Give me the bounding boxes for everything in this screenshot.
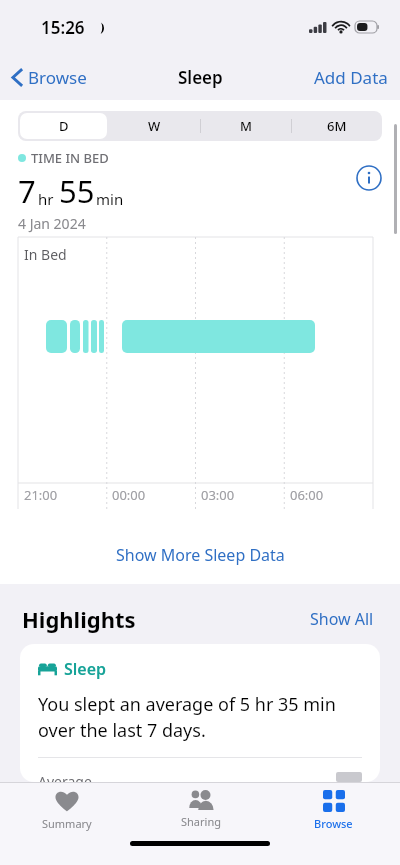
staticText: Sleep: [64, 658, 107, 680]
button[interactable]: Information: [356, 165, 382, 191]
staticText: Summary: [42, 816, 92, 831]
staticText: D: [59, 117, 69, 135]
staticText: Sleep: [178, 66, 223, 89]
staticText: Highlights: [22, 604, 136, 634]
staticText: Show All: [310, 608, 374, 630]
staticText: Browse: [28, 66, 87, 89]
staticText: 03:00: [201, 486, 235, 504]
button[interactable]: Sharing: [134, 783, 267, 833]
staticText: Sharing: [181, 814, 221, 829]
staticText: Add Data: [314, 66, 388, 89]
button[interactable]: Show More Sleep Data: [0, 536, 400, 574]
staticText: Average: [38, 772, 92, 782]
button[interactable]: Summary: [0, 783, 134, 833]
staticText: Show More Sleep Data: [116, 544, 285, 566]
button[interactable]: M: [200, 111, 291, 141]
staticText: min: [96, 189, 124, 209]
staticText: In Bed: [24, 245, 67, 264]
staticText: Browse: [314, 816, 353, 831]
button[interactable]: 6M: [291, 111, 382, 141]
staticText: TIME IN BED: [31, 149, 109, 167]
staticText: You slept an average of 5 hr 35 min over…: [38, 692, 362, 743]
button[interactable]: Sleep: [20, 644, 380, 782]
staticText: 7: [18, 170, 36, 212]
button[interactable]: Show All: [306, 604, 378, 634]
button[interactable]: W: [109, 111, 200, 141]
staticText: M: [240, 117, 252, 135]
staticText: 21:00: [24, 486, 58, 504]
staticText: 55: [59, 170, 95, 212]
staticText: 06:00: [290, 486, 324, 504]
staticText: 4 Jan 2024: [18, 214, 86, 233]
staticText: W: [148, 117, 161, 135]
staticText: 15:26: [41, 16, 85, 39]
staticText: 6M: [327, 117, 347, 135]
staticText: 00:00: [112, 486, 146, 504]
button[interactable]: Browse: [0, 60, 95, 95]
button[interactable]: Browse: [267, 783, 400, 833]
staticText: hr: [38, 189, 54, 209]
button[interactable]: Add Data: [302, 60, 400, 95]
button[interactable]: D: [18, 111, 109, 141]
